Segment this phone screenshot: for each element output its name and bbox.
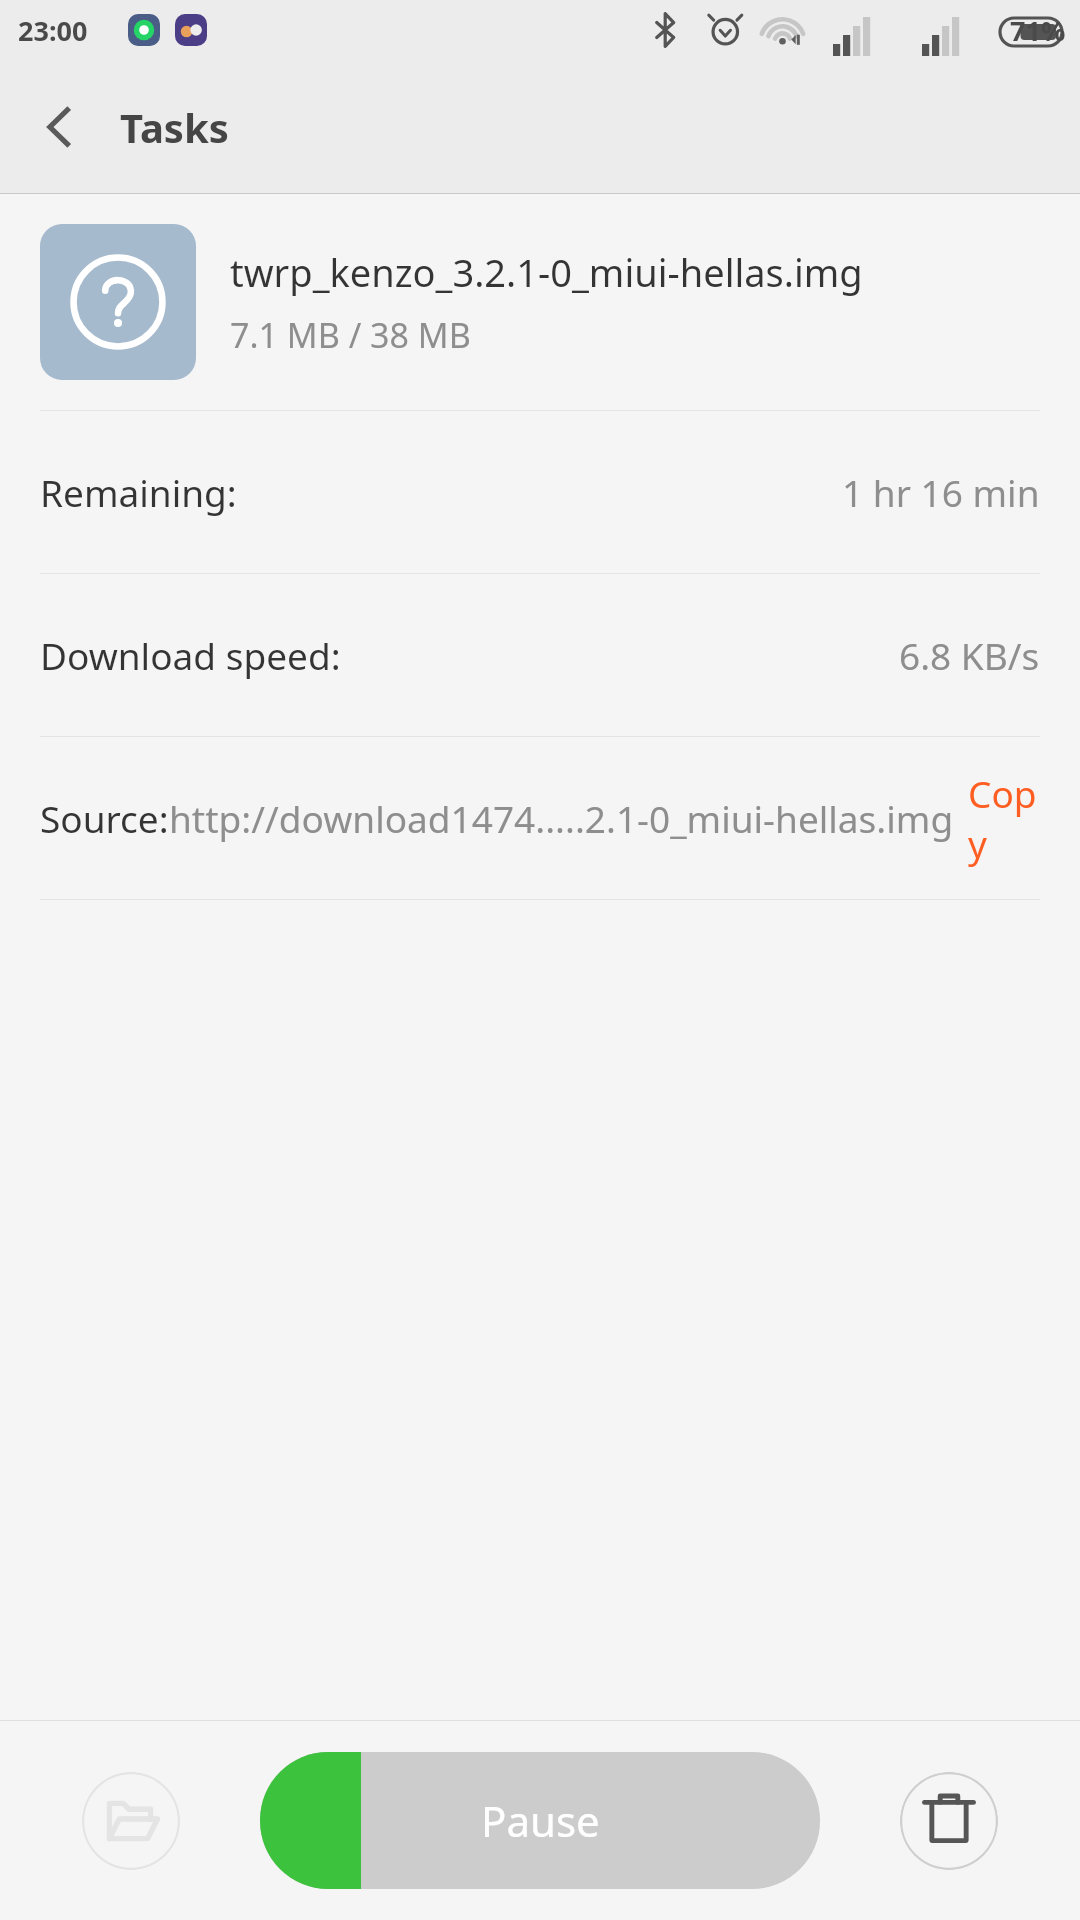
staticText: 1 hr 16 min <box>842 467 1040 517</box>
button[interactable]: twrp_kenzo_3.2.1-0_miui-hellas.img <box>0 194 1080 410</box>
button[interactable]: Remaining: <box>0 411 1080 573</box>
staticText: Source: <box>40 793 169 843</box>
staticText: Pause <box>481 1792 600 1849</box>
button[interactable]: Copy <box>954 768 1040 868</box>
button[interactable]: Back <box>12 79 108 175</box>
staticText: http://download1474.....2.1-0_miui-hella… <box>169 793 954 843</box>
staticText: twrp_kenzo_3.2.1-0_miui-hellas.img <box>230 246 863 298</box>
staticText: Download speed: <box>40 630 341 680</box>
staticText: Remaining: <box>40 467 237 517</box>
button[interactable]: Pause <box>260 1752 820 1889</box>
staticText: 23:00 <box>18 12 88 49</box>
button[interactable]: Open folder <box>82 1772 180 1870</box>
button[interactable]: Delete <box>900 1772 998 1870</box>
staticText: 71% <box>1010 12 1066 49</box>
staticText: Tasks <box>120 100 229 154</box>
staticText: Copy <box>968 768 1040 868</box>
staticText: 6.8 KB/s <box>899 630 1040 680</box>
staticText: 7.1 MB / 38 MB <box>230 312 471 358</box>
button[interactable]: Download speed: <box>0 574 1080 736</box>
